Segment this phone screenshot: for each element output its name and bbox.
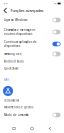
button[interactable]: Quick Share [0,65,64,72]
button[interactable]: Tecla lateral [0,97,64,104]
button[interactable]: Android Auto [0,58,64,65]
button[interactable]: Labs [0,85,64,97]
button[interactable]: Samsung DeX [0,50,64,58]
staticText: Tecla lateral [4,99,19,102]
staticText: Android Auto [4,60,24,63]
staticText: Chamadas e mensagens [4,28,35,32]
staticText: Quick Share [4,67,19,70]
button[interactable]: Chamadas e mensagens [0,26,64,38]
staticText: Movimentos e gestos [4,105,33,109]
staticText: Labs [4,78,9,81]
staticText: Samsung DeX [4,52,22,56]
staticText: Ligar ao Windows [4,18,27,22]
staticText: 4G [54,2,57,5]
button[interactable]: Continuar aplicações de [0,38,64,50]
button[interactable]: Ligar ao Windows [0,14,64,26]
staticText: dispositivos [4,44,20,48]
button[interactable]: Movimentos e gestos [0,104,64,110]
staticText: Funções avançadas [10,8,43,13]
staticText: Modo de uma mão [4,113,29,117]
staticText: Continuar aplicações de [4,40,37,44]
button[interactable]: Modo de uma mão [0,110,64,119]
button[interactable]: Back [38,124,62,133]
button[interactable]: Back [3,7,8,14]
button[interactable]: Recent apps [2,124,26,133]
staticText: 9:41 [3,2,7,5]
staticText: noutros dispositivos [4,32,32,36]
button[interactable]: Home [26,124,38,133]
